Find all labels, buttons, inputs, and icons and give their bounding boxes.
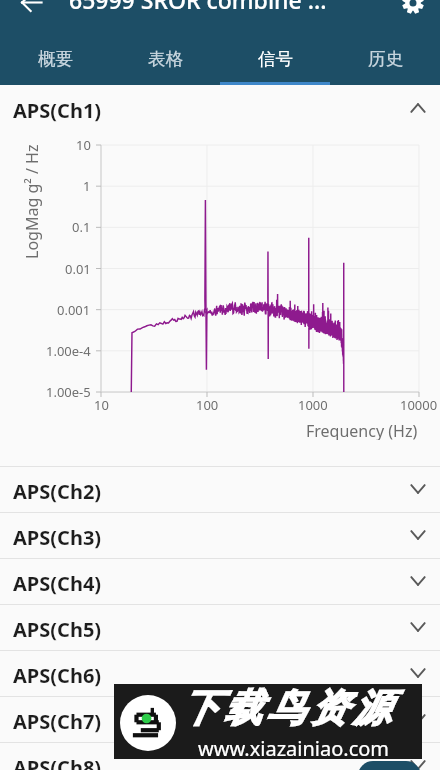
staticText: APS(Ch7): [13, 708, 102, 735]
staticText: APS(Ch3): [13, 524, 102, 551]
staticText: 65999 SROR combine ...: [69, 0, 327, 15]
staticText: APS(Ch6): [13, 662, 102, 689]
button[interactable]: Settings: [393, 0, 433, 23]
staticText: LogMag g² / Hz: [21, 144, 43, 259]
button[interactable]: 表格: [110, 26, 220, 85]
staticText: 10000: [400, 396, 438, 414]
staticText: 1.00e-4: [46, 342, 91, 360]
staticText: 0.1: [72, 218, 91, 236]
staticText: 10: [94, 396, 109, 414]
staticText: APS(Ch5): [13, 616, 102, 643]
button[interactable]: APS(Ch5): [0, 605, 440, 650]
staticText: 0.01: [65, 260, 91, 278]
button[interactable]: APS(Ch1): [0, 86, 440, 131]
staticText: 100: [196, 396, 219, 414]
staticText: 1.00e-5: [46, 383, 91, 401]
staticText: 下载鸟资源: [178, 684, 393, 732]
staticText: 1000: [298, 396, 328, 414]
staticText: Frequency (Hz): [306, 420, 418, 440]
staticText: 0.001: [57, 301, 91, 319]
staticText: APS(Ch2): [13, 478, 102, 505]
button[interactable]: 历史: [330, 26, 440, 85]
button[interactable]: Back: [11, 0, 51, 22]
staticText: 概要: [38, 48, 73, 70]
button[interactable]: 信号: [220, 26, 330, 85]
staticText: 1: [83, 177, 91, 195]
staticText: 表格: [148, 48, 183, 70]
button[interactable]: APS(Ch6): [0, 651, 440, 696]
button[interactable]: APS(Ch8): [0, 743, 440, 770]
staticText: www.xiazainiao.com: [198, 735, 390, 759]
staticText: APS(Ch1): [13, 97, 102, 124]
staticText: 历史: [368, 48, 403, 70]
button[interactable]: 概要: [0, 26, 110, 85]
button[interactable]: APS(Ch2): [0, 467, 440, 512]
button[interactable]: APS(Ch3): [0, 513, 440, 558]
staticText: 信号: [258, 48, 293, 70]
staticText: APS(Ch4): [13, 570, 102, 597]
button[interactable]: APS(Ch7): [0, 697, 440, 742]
staticText: APS(Ch8): [13, 754, 102, 770]
button[interactable]: APS(Ch4): [0, 559, 440, 604]
staticText: 10: [76, 136, 91, 154]
